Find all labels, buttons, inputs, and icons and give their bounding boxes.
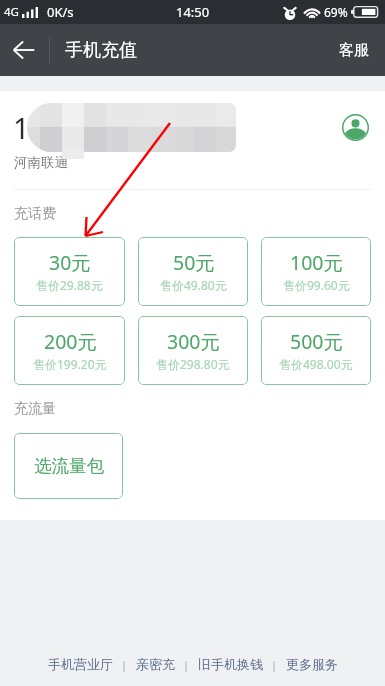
staticText: 河南联通 <box>14 154 68 171</box>
button[interactable]: 返回 <box>0 26 48 74</box>
button[interactable]: 200元 <box>14 316 125 385</box>
staticText: 手机充值 <box>65 39 137 62</box>
button[interactable]: 选流量包 <box>14 433 123 499</box>
staticText: 更多服务 <box>286 656 338 672</box>
staticText: 4G <box>4 4 19 20</box>
staticText: 充话费 <box>14 205 56 223</box>
staticText: | <box>271 657 278 672</box>
staticText: 售价49.80元 <box>160 277 227 293</box>
staticText: 30元 <box>49 249 91 276</box>
staticText: 69% <box>324 4 348 20</box>
button[interactable]: 客服 <box>323 27 385 74</box>
staticText: 1 <box>13 108 30 147</box>
staticText: 300元 <box>167 328 220 355</box>
button[interactable]: 亲密充 <box>128 649 183 679</box>
staticText: 亲密充 <box>136 656 175 672</box>
button[interactable]: 账户 <box>342 114 369 141</box>
staticText: | <box>121 657 128 672</box>
staticText: | <box>183 657 190 672</box>
staticText: 售价99.60元 <box>283 277 350 293</box>
staticText: 售价199.20元 <box>33 356 107 372</box>
staticText: 0K/s <box>47 3 74 21</box>
staticText: 50元 <box>173 249 215 276</box>
staticText: 充流量 <box>14 400 56 418</box>
staticText: 选流量包 <box>34 455 104 477</box>
button[interactable]: 300元 <box>138 316 248 385</box>
button[interactable]: 500元 <box>261 316 371 385</box>
button[interactable]: 旧手机换钱 <box>190 649 271 679</box>
button[interactable]: 100元 <box>261 237 371 306</box>
staticText: 客服 <box>339 41 369 60</box>
button[interactable]: 50元 <box>138 237 248 306</box>
staticText: 售价298.80元 <box>156 356 230 372</box>
button[interactable]: 手机营业厅 <box>40 649 121 679</box>
staticText: 100元 <box>290 249 343 276</box>
staticText: 200元 <box>44 328 97 355</box>
staticText: 售价498.00元 <box>279 356 353 372</box>
staticText: 售价29.88元 <box>36 277 103 293</box>
button[interactable]: 更多服务 <box>278 649 346 679</box>
staticText: 手机营业厅 <box>48 656 113 672</box>
staticText: 500元 <box>290 328 343 355</box>
staticText: 旧手机换钱 <box>198 656 263 672</box>
button[interactable]: 30元 <box>14 237 125 306</box>
staticText: 14:50 <box>176 3 210 21</box>
